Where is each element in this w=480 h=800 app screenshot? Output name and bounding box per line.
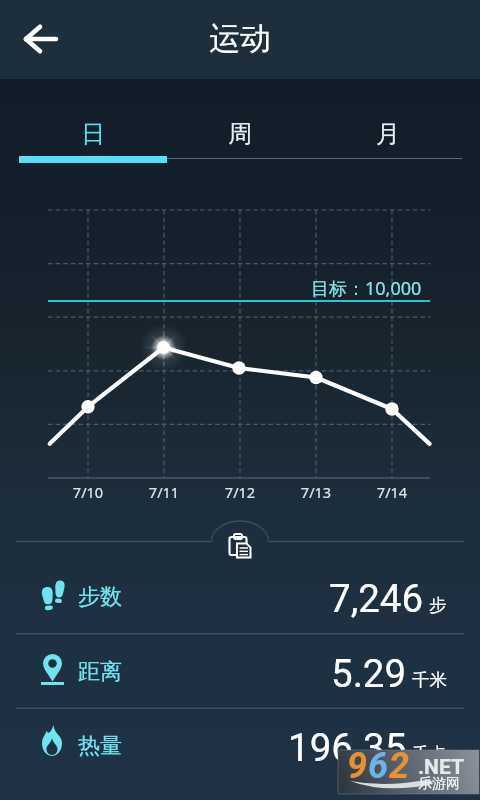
button[interactable]: Back [11,9,71,69]
staticText: 日 [81,119,105,149]
staticText: 6 [368,745,389,787]
button[interactable]: 月 [314,110,462,158]
staticText: 步 [429,594,447,616]
staticText: 7/11 [139,482,189,502]
staticText: 196.35 [288,725,407,770]
button[interactable]: 9 [338,750,479,794]
staticText: 运动 [209,19,271,58]
staticText: 7/10 [63,482,113,502]
staticText: 距离 [78,658,122,686]
staticText: 7/14 [367,482,417,502]
staticText: 月 [376,119,400,149]
button[interactable]: 步数 [0,559,480,634]
staticText: 千米 [412,669,447,691]
staticText: 5.29 [331,651,407,696]
staticText: 乐游网 [418,775,460,793]
staticText: 目标：10,000 [311,276,422,301]
staticText: 热量 [78,732,122,760]
staticText: 7/12 [215,482,265,502]
button[interactable]: 距离 [0,634,480,709]
button[interactable]: 日 [19,110,166,158]
staticText: 周 [228,119,252,149]
staticText: 7,246 [329,576,424,621]
staticText: 2 [389,745,410,787]
staticText: .NET [418,755,464,780]
staticText: 步数 [78,583,122,611]
staticText: 千卡 [412,743,447,765]
staticText: 9 [347,745,368,787]
button[interactable]: 周 [166,110,314,158]
button[interactable]: 热量 [0,708,480,783]
staticText: 7/13 [291,482,341,502]
